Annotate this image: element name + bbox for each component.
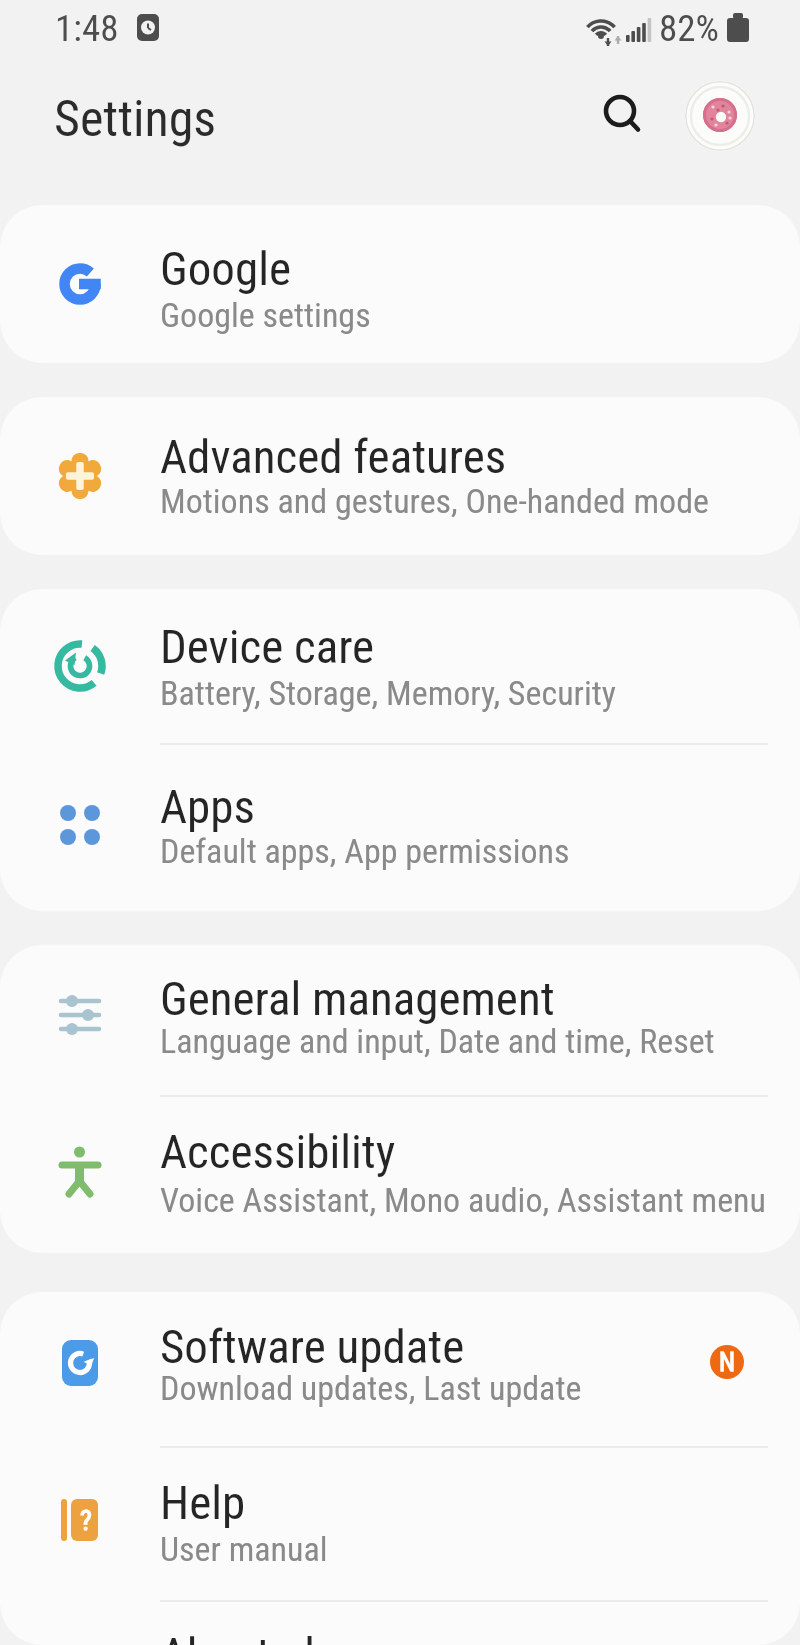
button[interactable]: Advanced features: [0, 397, 800, 555]
staticText: N: [719, 1347, 736, 1377]
staticText: Apps: [160, 779, 255, 834]
button[interactable]: Google: [0, 205, 800, 363]
staticText: Advanced features: [160, 429, 507, 484]
button[interactable]: Apps: [0, 745, 800, 909]
staticText: Device care: [160, 619, 375, 674]
staticText: Help: [160, 1475, 246, 1530]
staticText: 1:48: [55, 7, 119, 50]
staticText: Motions and gestures, One-handed mode: [160, 481, 709, 521]
staticText: ?: [80, 1504, 92, 1537]
staticText: 82%: [659, 7, 719, 50]
staticText: Software update: [160, 1319, 465, 1374]
staticText: Battery, Storage, Memory, Security: [160, 673, 616, 713]
staticText: Settings: [54, 90, 217, 149]
button[interactable]: [685, 81, 755, 151]
button[interactable]: Device care: [0, 589, 800, 743]
staticText: About phone: [160, 1627, 396, 1645]
button[interactable]: [590, 81, 650, 141]
staticText: Google settings: [160, 295, 371, 335]
staticText: Language and input, Date and time, Reset: [160, 1021, 715, 1061]
button[interactable]: ?: [0, 1448, 800, 1600]
button[interactable]: General management: [0, 945, 800, 1095]
button[interactable]: About phone: [0, 1602, 800, 1645]
staticText: User manual: [160, 1529, 328, 1569]
button[interactable]: Accessibility: [0, 1097, 800, 1253]
staticText: Voice Assistant, Mono audio, Assistant m…: [160, 1180, 766, 1220]
staticText: General management: [160, 971, 555, 1026]
staticText: Download updates, Last update: [160, 1368, 582, 1408]
staticText: Google: [160, 241, 291, 296]
button[interactable]: Software update: [0, 1292, 800, 1446]
staticText: Default apps, App permissions: [160, 831, 570, 871]
staticText: Accessibility: [160, 1124, 396, 1179]
